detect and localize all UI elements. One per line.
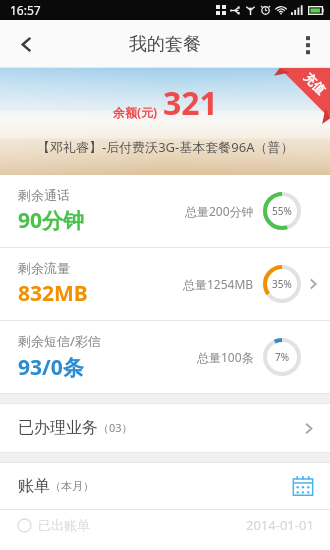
staticText: 已办理业务 <box>18 418 98 438</box>
staticText: 90分钟 <box>18 206 85 235</box>
button[interactable]: 已出账单 <box>0 510 330 540</box>
staticText: 7% <box>275 350 290 364</box>
button[interactable]: 剩余流量 <box>0 248 330 320</box>
staticText: 已出账单 <box>38 517 90 533</box>
staticText: 55% <box>272 204 292 218</box>
staticText: 我的套餐 <box>129 33 201 56</box>
staticText: 余额(元) <box>113 104 158 120</box>
staticText: 【邓礼睿】-后付费沃3G-基本套餐96A（普） <box>37 138 294 156</box>
button[interactable]: 已办理业务 <box>0 404 330 452</box>
button[interactable]: 剩余短信/彩信 <box>0 321 330 393</box>
staticText: 总量200分钟 <box>185 203 254 219</box>
staticText: 总量1254MB <box>183 276 254 292</box>
staticText: 93/0条 <box>18 353 84 382</box>
staticText: 账单 <box>18 476 50 496</box>
staticText: 总量100条 <box>197 349 254 365</box>
staticText: 剩余通话 <box>18 187 70 203</box>
staticText: （03） <box>98 420 133 435</box>
button[interactable]: 充值 Recharge <box>274 68 330 124</box>
button[interactable]: 剩余通话 <box>0 175 330 247</box>
staticText: 2014-01-01 <box>246 516 314 534</box>
staticText: （本月） <box>50 479 94 493</box>
staticText: 16:57 <box>10 2 41 18</box>
other: Calendar <box>292 475 314 497</box>
staticText: 321 <box>163 81 218 125</box>
button[interactable]: More options <box>286 20 330 68</box>
button[interactable]: Back <box>0 20 52 68</box>
staticText: 剩余流量 <box>18 260 70 276</box>
staticText: 充值 <box>301 70 329 97</box>
button[interactable]: 账单 <box>0 463 330 509</box>
staticText: 832MB <box>18 279 88 308</box>
staticText: 35% <box>272 277 292 291</box>
staticText: 剩余短信/彩信 <box>18 332 101 350</box>
